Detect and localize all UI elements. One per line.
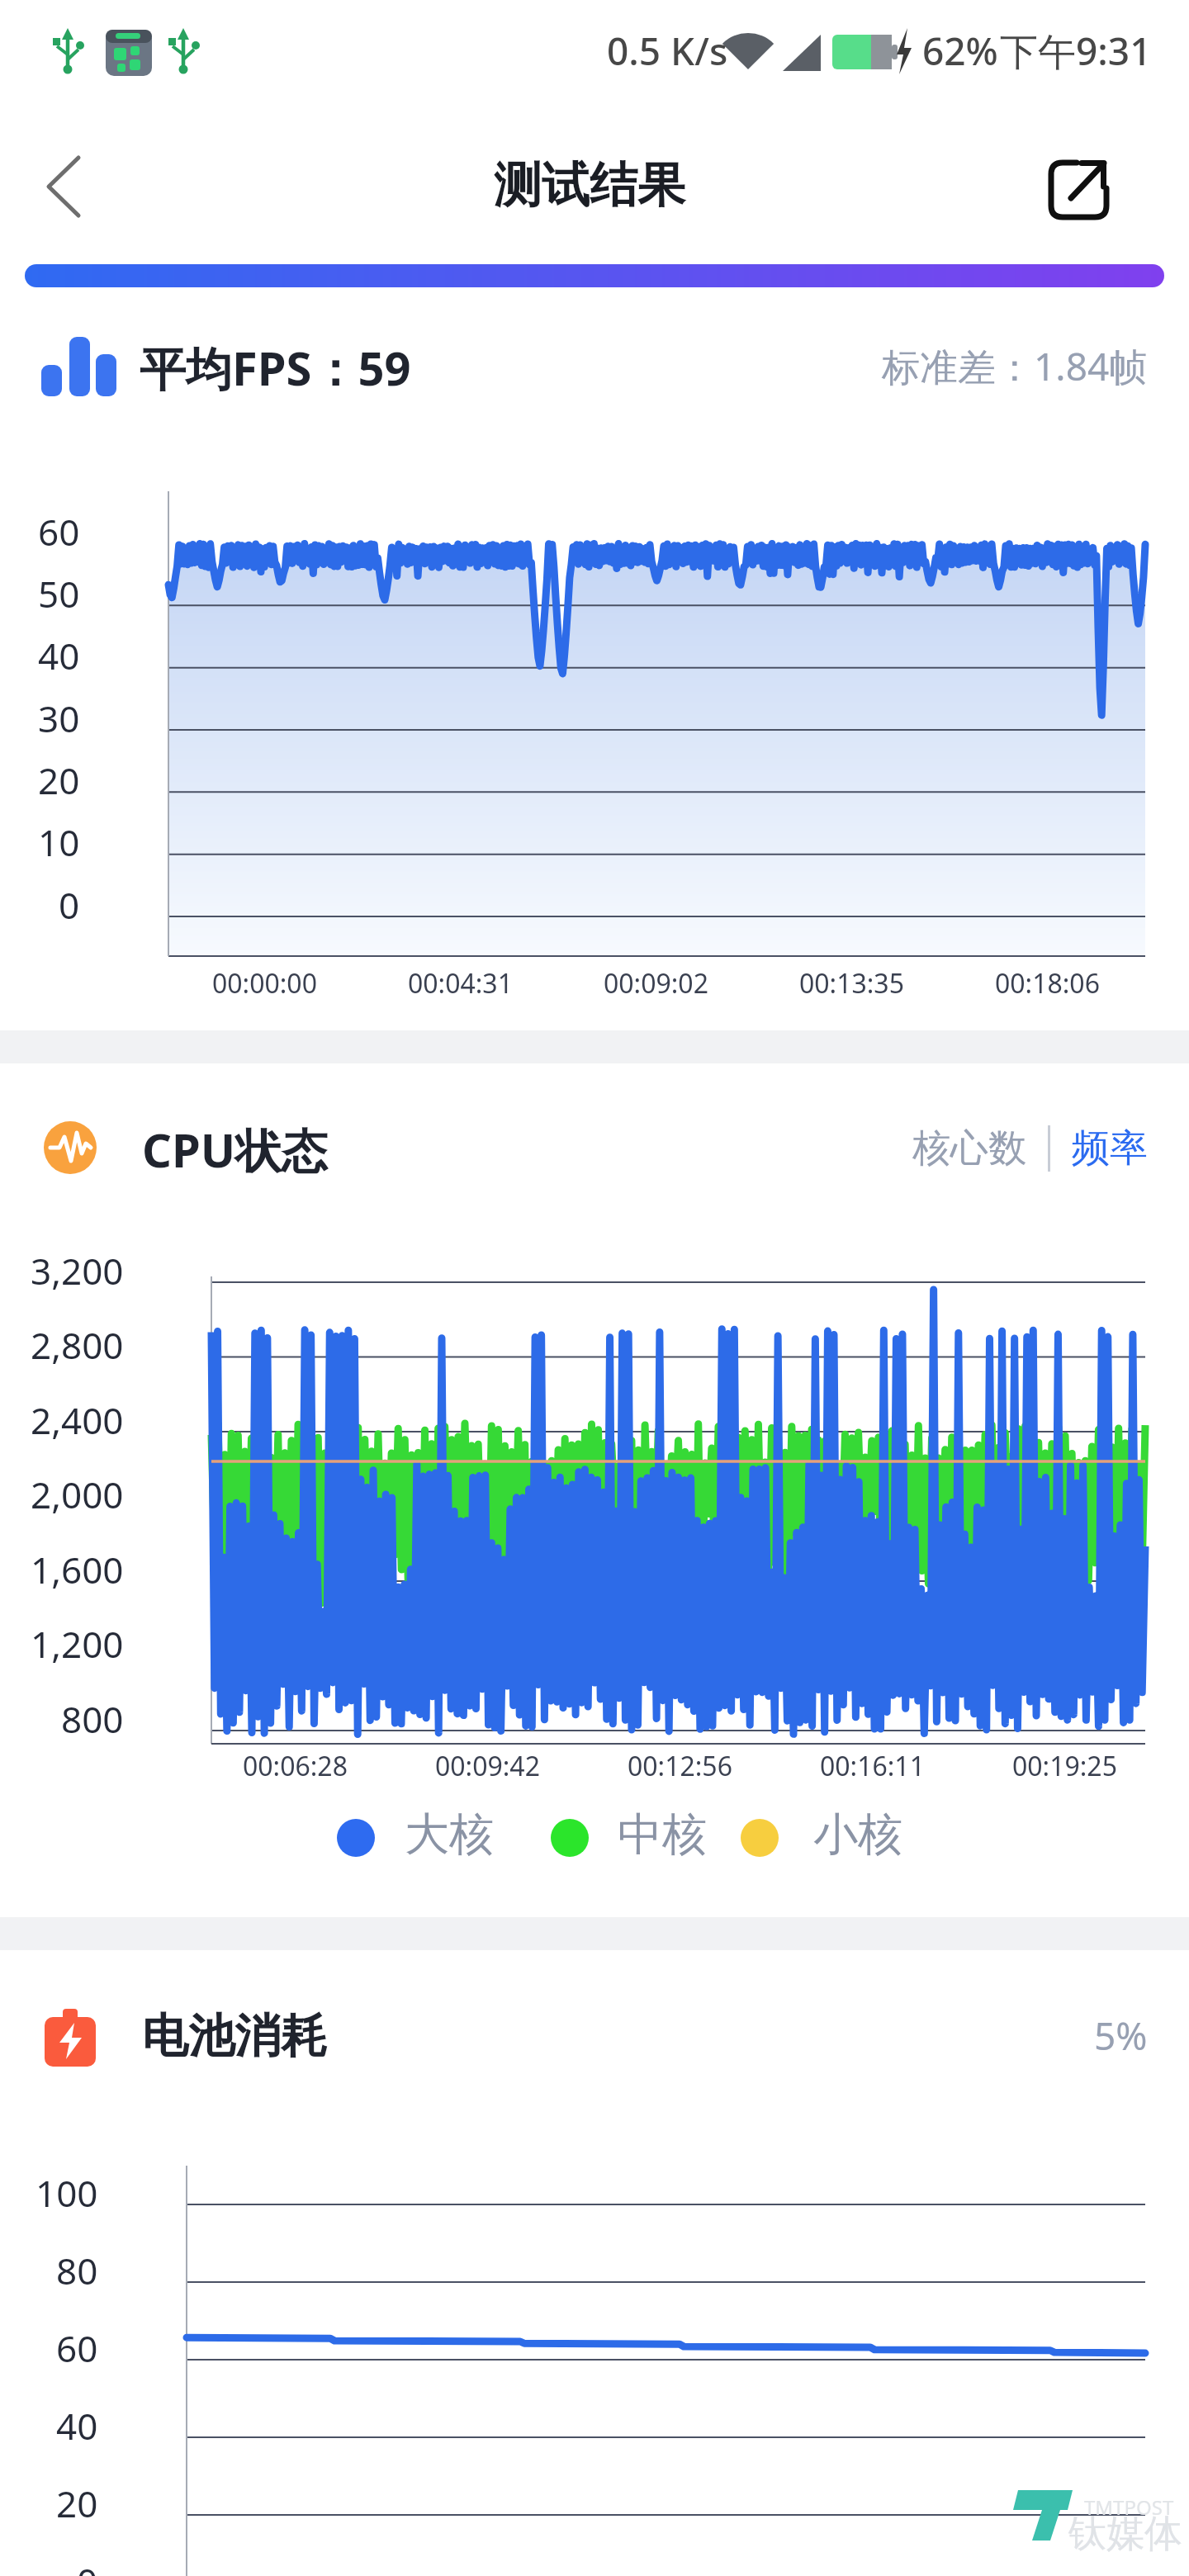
staticText: 40 <box>56 2401 98 2451</box>
staticText: 80 <box>56 2246 98 2295</box>
staticText: 100 <box>36 2168 98 2218</box>
staticText: TMTPOST <box>1084 2493 1174 2521</box>
button[interactable] <box>1026 138 1131 242</box>
staticText: 5% <box>1094 2010 1148 2062</box>
staticText: 30 <box>38 694 80 743</box>
staticText: 00:09:02 <box>604 965 708 1002</box>
staticText: 50 <box>38 569 80 618</box>
staticText: 平均FPS：59 <box>140 336 411 399</box>
staticText: 1,200 <box>31 1619 124 1669</box>
staticText: 00:16:11 <box>820 1748 925 1784</box>
staticText: 00:04:31 <box>408 965 513 1002</box>
staticText: 800 <box>61 1694 124 1744</box>
staticText: 2,000 <box>31 1470 124 1519</box>
staticText: 0.5 K/s <box>607 25 728 77</box>
staticText: 00:19:25 <box>1012 1748 1117 1784</box>
staticText: 大核 <box>405 1807 494 1863</box>
staticText: 00:09:42 <box>435 1748 540 1784</box>
staticText: 40 <box>38 631 80 680</box>
staticText: 下午9:31 <box>1000 25 1152 77</box>
button[interactable]: 频率 <box>1072 1125 1148 1172</box>
staticText: 2,400 <box>31 1395 124 1445</box>
staticText: 钛媒体 <box>1068 2510 1182 2558</box>
button[interactable]: 小核 <box>813 1807 902 1863</box>
staticText: CPU状态 <box>142 1118 329 1181</box>
button[interactable] <box>17 137 116 236</box>
staticText: 测试结果 <box>494 155 685 215</box>
staticText: 电池消耗 <box>142 2007 327 2066</box>
staticText: 标准差：1.84帧 <box>882 340 1148 392</box>
staticText: 00:06:28 <box>243 1748 348 1784</box>
staticText: 00:13:35 <box>799 965 904 1002</box>
staticText: 00:00:00 <box>212 965 317 1002</box>
staticText: 小核 <box>813 1807 902 1863</box>
button[interactable]: 核心数 <box>912 1125 1026 1172</box>
staticText: 60 <box>56 2323 98 2373</box>
staticText: 00:18:06 <box>995 965 1100 1002</box>
staticText: 10 <box>38 817 80 867</box>
staticText: 20 <box>56 2479 98 2528</box>
staticText: 频率 <box>1072 1125 1148 1172</box>
staticText: 00:12:56 <box>628 1748 732 1784</box>
staticText: 60 <box>38 507 80 556</box>
staticText: 中核 <box>618 1807 707 1863</box>
staticText: 0 <box>59 880 80 930</box>
button[interactable]: 大核 <box>405 1807 494 1863</box>
staticText: 2,800 <box>31 1320 124 1370</box>
staticText: 3,200 <box>31 1246 124 1295</box>
staticText: 20 <box>38 755 80 805</box>
staticText: 0 <box>77 2556 98 2576</box>
staticText: 1,600 <box>31 1545 124 1594</box>
button[interactable]: 中核 <box>618 1807 707 1863</box>
staticText: 62% <box>922 25 998 77</box>
staticText: 核心数 <box>912 1125 1026 1172</box>
